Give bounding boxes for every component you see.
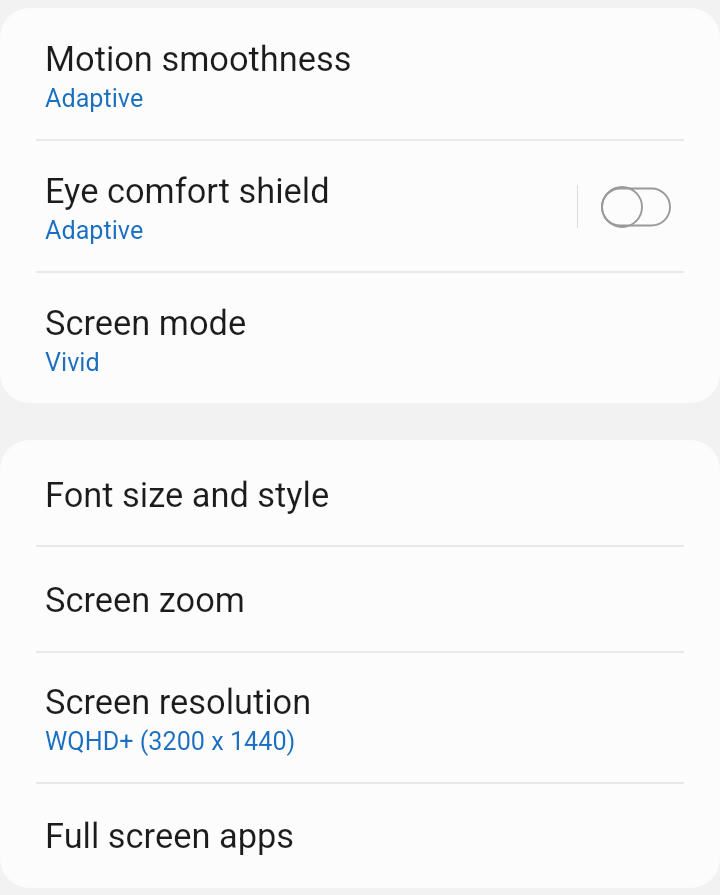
staticText: Motion smoothness — [45, 39, 352, 79]
staticText: Full screen apps — [45, 816, 295, 856]
button[interactable]: Screen zoom — [0, 546, 720, 652]
staticText: Font size and style — [45, 475, 330, 515]
staticText: Vivid — [45, 348, 100, 378]
staticText: Screen zoom — [45, 580, 245, 620]
button[interactable]: Screen resolution — [0, 652, 720, 783]
button[interactable]: Eye comfort shield, off — [601, 186, 671, 228]
button[interactable]: Font size and style — [0, 440, 720, 546]
staticText: Screen mode — [45, 303, 247, 343]
button[interactable]: Screen mode — [0, 272, 720, 403]
button[interactable]: Full screen apps — [0, 783, 720, 888]
staticText: WQHD+ (3200 x 1440) — [45, 727, 296, 757]
staticText: Eye comfort shield — [45, 171, 330, 211]
button[interactable]: Eye comfort shield — [0, 140, 720, 272]
staticText: Adaptive — [45, 216, 144, 246]
staticText: Screen resolution — [45, 682, 312, 722]
button[interactable]: Motion smoothness — [0, 8, 720, 140]
staticText: Adaptive — [45, 84, 144, 114]
